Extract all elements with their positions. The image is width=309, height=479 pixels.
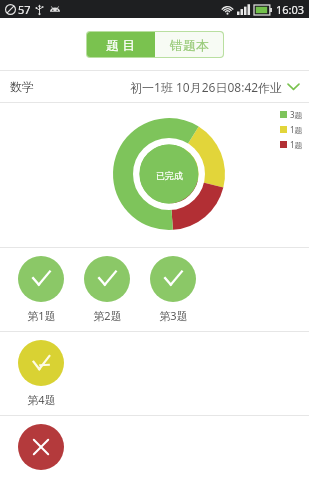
button[interactable]: Correct	[140, 256, 206, 323]
other: Partially correct	[30, 352, 52, 374]
other: Incorrect	[31, 437, 51, 457]
staticText: 1题	[290, 139, 303, 150]
staticText: 错题本	[170, 37, 209, 53]
button[interactable]: Incorrect	[8, 424, 74, 470]
staticText: 57	[18, 2, 31, 17]
staticText: 初一1班 10月26日08:42作业	[130, 79, 283, 95]
staticText: 第1题	[27, 308, 56, 323]
staticText: 3题	[290, 109, 303, 120]
button[interactable]: Correct	[74, 256, 140, 323]
other: Correct	[96, 268, 118, 290]
staticText: 16:03	[276, 2, 305, 17]
button[interactable]: 数学	[0, 71, 309, 102]
other: Expand	[288, 83, 299, 90]
staticText: 已完成	[156, 170, 183, 181]
button[interactable]: Correct	[8, 256, 74, 323]
button[interactable]: 题 目	[87, 32, 155, 57]
other: Correct	[30, 268, 52, 290]
staticText: 数学	[10, 79, 34, 94]
staticText: 第4题	[27, 392, 56, 407]
staticText: 第3题	[159, 308, 188, 323]
button[interactable]: 错题本	[155, 32, 223, 57]
button[interactable]: Partially correct	[8, 340, 74, 407]
other: Correct	[162, 268, 184, 290]
staticText: 1题	[290, 124, 303, 135]
staticText: 题 目	[106, 36, 136, 54]
staticText: 第2题	[93, 308, 122, 323]
